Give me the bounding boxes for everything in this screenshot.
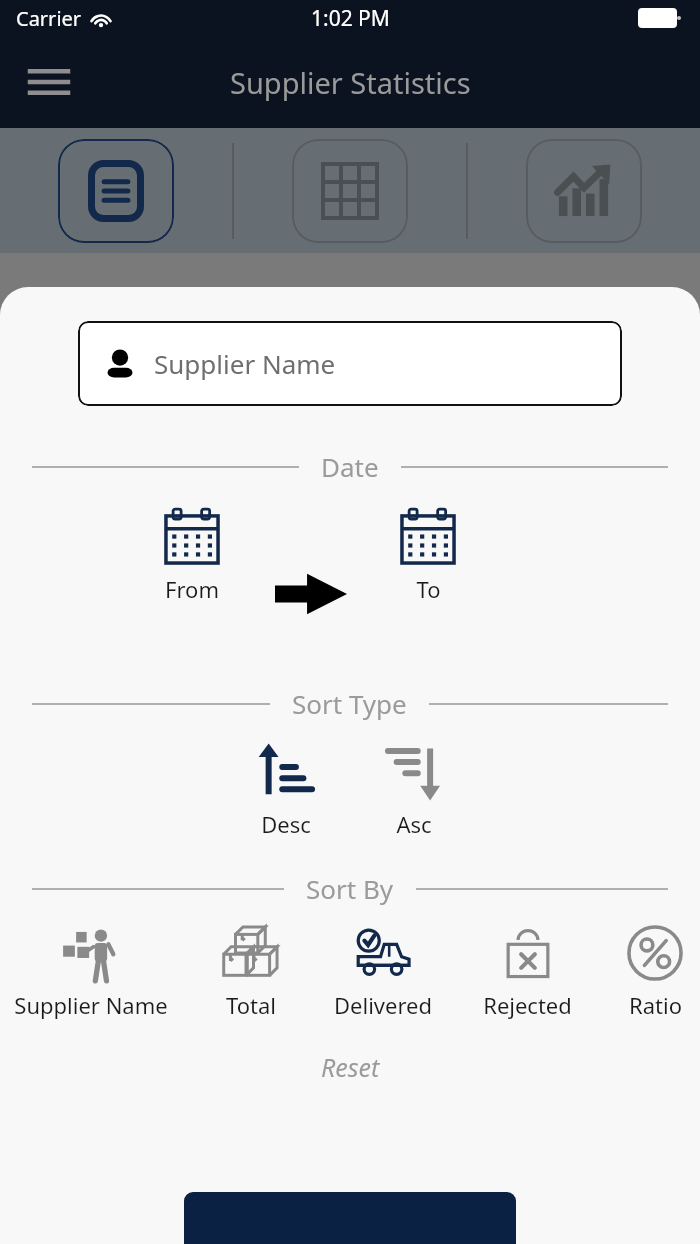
staticText: Supplier Name [154,346,336,381]
button[interactable]: View [292,139,408,243]
staticText: Date [321,449,379,484]
button[interactable]: Supplier Name [8,920,174,1022]
staticText: Delivered [334,990,432,1020]
button[interactable]: To [391,504,465,606]
staticText: Desc [261,809,311,839]
staticText: Sort Type [292,686,407,721]
staticText: Total [226,990,276,1020]
button[interactable]: Supplier Name [78,321,622,406]
staticText: 1:02 PM [311,4,390,33]
button[interactable]: Delivered [328,920,438,1022]
button[interactable]: Menu [26,59,72,105]
button[interactable]: View [526,139,642,243]
staticText: Carrier [16,5,82,32]
button[interactable]: Ratio [618,920,692,1022]
staticText: Supplier Statistics [230,63,471,102]
button[interactable]: Desc [249,739,323,841]
staticText: Ratio [629,990,682,1020]
staticText: To [416,574,441,604]
staticText: Asc [396,809,432,839]
staticText: From [165,574,219,604]
staticText: Supplier Name [14,990,168,1020]
button[interactable]: Reset [307,1046,394,1088]
button[interactable]: From [155,504,229,606]
button[interactable]: Rejected [477,920,578,1022]
button[interactable] [184,1192,516,1244]
button[interactable]: List view [58,139,174,243]
staticText: Rejected [483,990,572,1020]
button[interactable]: Asc [377,739,451,841]
button[interactable]: Total [214,920,288,1022]
staticText: Sort By [306,871,394,906]
